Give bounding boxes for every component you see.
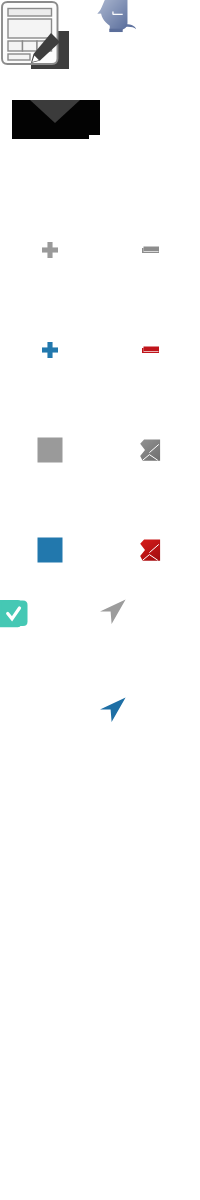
button[interactable]: Mail [10,98,104,142]
button[interactable]: Stop [34,434,66,466]
button[interactable]: Add [34,234,66,266]
button[interactable]: Cancel [133,533,165,565]
button[interactable]: Send [97,596,129,628]
button[interactable]: Accept [0,594,32,636]
button[interactable]: Add [34,334,66,366]
button[interactable]: Edit form [0,0,72,72]
button[interactable]: Send [97,694,129,726]
button[interactable]: Stop [34,534,66,566]
button[interactable]: Cancel [133,433,165,465]
button[interactable]: Remove [134,234,166,266]
button[interactable]: Reply [94,0,138,38]
button[interactable]: Remove [134,334,166,366]
